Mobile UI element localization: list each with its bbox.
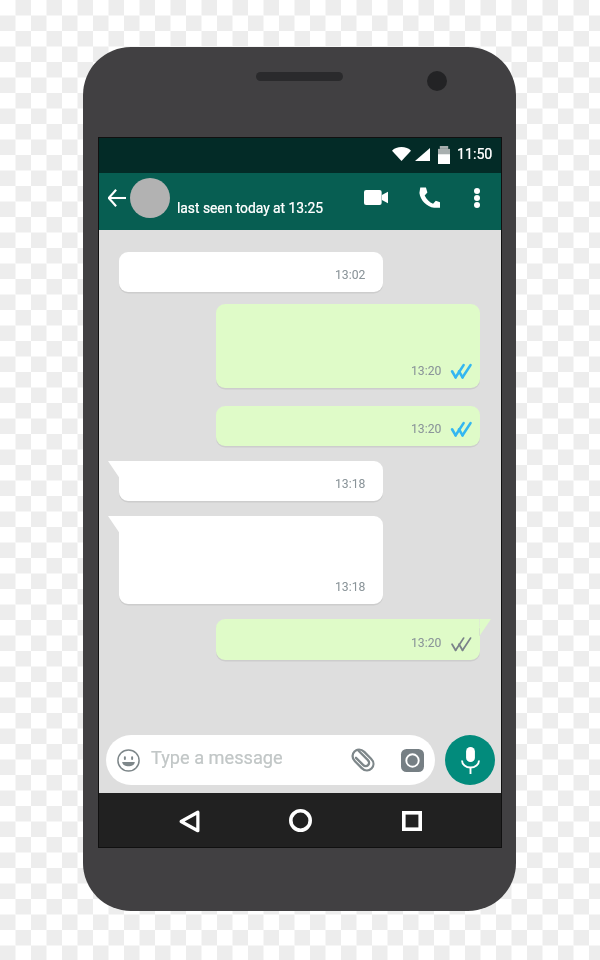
button[interactable]: Back [101, 182, 133, 214]
button[interactable]: Back [169, 801, 209, 841]
button[interactable]: Recent apps [392, 801, 432, 841]
staticText: 13:18 [335, 580, 366, 594]
staticText: 13:20 [411, 364, 442, 378]
staticText: Type a message [151, 747, 283, 768]
staticText: last seen today at 13:25 [177, 200, 323, 216]
button[interactable]: Record voice message [445, 735, 495, 785]
button[interactable]: 13:02 [119, 252, 383, 292]
staticText: 13:20 [411, 422, 442, 436]
button[interactable]: 13:20 [216, 406, 480, 446]
button[interactable]: Home [280, 800, 320, 840]
button[interactable]: Type a message [106, 735, 435, 785]
button[interactable]: Video call [359, 181, 392, 214]
staticText: 11:50 [457, 146, 493, 163]
staticText: 13:02 [335, 268, 366, 282]
button[interactable]: 13:18 [119, 461, 383, 501]
button[interactable]: 13:18 [119, 516, 383, 604]
staticText: 13:20 [411, 636, 442, 650]
button[interactable]: Profile photo [130, 178, 170, 218]
staticText: 13:18 [335, 477, 366, 491]
button[interactable]: More options [462, 183, 491, 212]
button[interactable]: 13:20 [216, 304, 480, 388]
button[interactable]: Call [413, 181, 446, 214]
button[interactable]: 13:20 [216, 619, 480, 660]
